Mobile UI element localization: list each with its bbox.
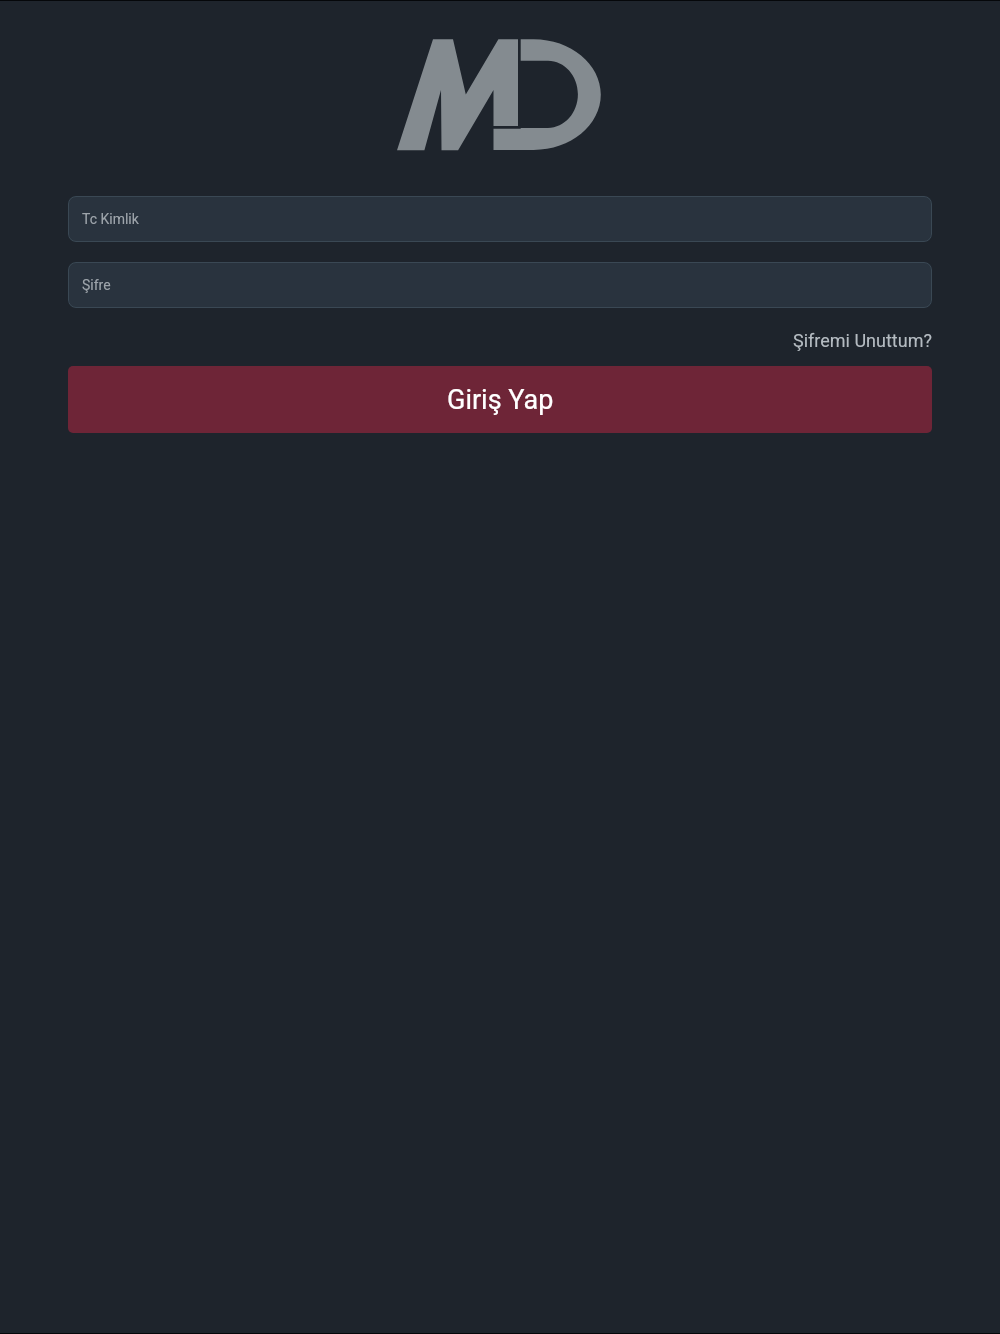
button[interactable]: Şifremi Unuttum?	[793, 325, 932, 355]
button[interactable]: Tc Kimlik	[68, 196, 932, 242]
button[interactable]: Şifre	[68, 262, 932, 308]
other: MD logo	[395, 36, 605, 152]
staticText: Giriş Yap	[447, 384, 554, 416]
staticText: Şifremi Unuttum?	[793, 330, 932, 351]
button[interactable]: Giriş Yap	[68, 366, 932, 433]
staticText: Şifre	[82, 277, 111, 293]
staticText: Tc Kimlik	[82, 211, 139, 227]
